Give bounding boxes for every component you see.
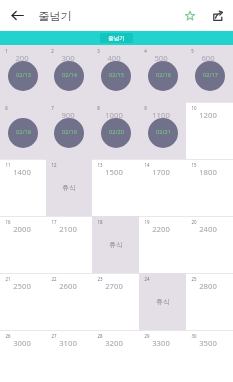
button[interactable]: 30 [186,330,233,382]
staticText: 1800 [199,167,217,177]
staticText: 1100 [152,110,170,120]
button[interactable]: 10 [186,102,233,159]
staticText: 11 [5,162,11,168]
staticText: 3100 [59,338,77,348]
button[interactable]: 5 [186,45,233,102]
staticText: 줄넘기 [38,9,72,23]
staticText: 2200 [152,224,170,234]
staticText: 02/15 [109,71,124,79]
staticText: 02/20 [109,128,124,136]
staticText: 3500 [199,338,217,348]
staticText: 2700 [105,281,123,291]
button[interactable]: 6 [0,102,46,159]
button[interactable]: 29 [139,330,186,382]
staticText: 휴식 [156,297,170,306]
staticText: 2 [51,48,54,54]
staticText: 200 [15,53,29,63]
staticText: 3 [97,48,100,54]
staticText: 30 [191,333,197,339]
staticText: 19 [144,219,150,225]
staticText: 4 [144,48,147,54]
button[interactable]: 13 [92,159,139,216]
button[interactable]: 8 [92,102,139,159]
button[interactable]: 22 [46,273,92,330]
staticText: 2400 [199,224,217,234]
staticText: 14 [144,162,150,168]
staticText: 5 [191,48,194,54]
staticText: 9 [144,105,147,111]
button[interactable]: 25 [186,273,233,330]
staticText: 1 [5,48,8,54]
staticText: 10 [191,105,197,111]
staticText: 휴식 [109,240,123,249]
staticText: 1200 [199,110,217,120]
staticText: 600 [201,53,215,63]
button[interactable]: Favorite [176,2,204,30]
staticText: 02/19 [62,128,77,136]
staticText: 27 [51,333,57,339]
staticText: 2800 [199,281,217,291]
button[interactable]: 11 [0,159,46,216]
button[interactable]: 23 [92,273,139,330]
staticText: 3300 [152,338,170,348]
button[interactable]: 7 [46,102,92,159]
button[interactable]: 21 [0,273,46,330]
staticText: 2100 [59,224,77,234]
staticText: 3200 [105,338,123,348]
staticText: 21 [5,276,11,282]
staticText: 8 [97,105,100,111]
button[interactable]: Back [0,0,31,31]
staticText: 20 [191,219,197,225]
staticText: 02/13 [16,71,31,79]
staticText: 18 [97,219,103,225]
staticText: 900 [61,110,75,120]
button[interactable]: 15 [186,159,233,216]
staticText: 17 [51,219,57,225]
button[interactable]: 줄넘기 [100,33,133,43]
button[interactable]: 19 [139,216,186,273]
button[interactable]: 3 [92,45,139,102]
staticText: 2500 [13,281,31,291]
staticText: 23 [97,276,103,282]
button[interactable]: 27 [46,330,92,382]
button[interactable]: 2 [46,45,92,102]
staticText: 16 [5,219,11,225]
staticText: 2600 [59,281,77,291]
staticText: 28 [97,333,103,339]
button[interactable]: 16 [0,216,46,273]
button[interactable]: 28 [92,330,139,382]
button[interactable]: 24 [139,273,186,330]
staticText: 13 [97,162,103,168]
staticText: 02/21 [156,128,171,136]
staticText: 7 [51,105,54,111]
staticText: 휴식 [62,183,76,192]
staticText: 02/14 [62,71,77,79]
staticText: 1400 [13,167,31,177]
button[interactable]: 18 [92,216,139,273]
staticText: 400 [107,53,121,63]
staticText: 1000 [105,110,123,120]
staticText: 02/16 [156,71,171,79]
button[interactable]: 1 [0,45,46,102]
button[interactable]: 12 [46,159,92,216]
staticText: 02/17 [203,71,218,79]
button[interactable]: 17 [46,216,92,273]
staticText: 26 [5,333,11,339]
staticText: 02/18 [16,128,31,136]
staticText: 300 [61,53,75,63]
button[interactable]: Share [204,2,232,30]
button[interactable]: 4 [139,45,186,102]
staticText: 1700 [152,167,170,177]
staticText: 줄넘기 [108,35,125,42]
button[interactable]: 14 [139,159,186,216]
staticText: 24 [144,276,150,282]
button[interactable]: 26 [0,330,46,382]
staticText: 15 [191,162,197,168]
button[interactable]: 9 [139,102,186,159]
staticText: 29 [144,333,150,339]
staticText: 500 [154,53,168,63]
staticText: 25 [191,276,197,282]
staticText: 12 [51,162,57,168]
button[interactable]: 20 [186,216,233,273]
staticText: 6 [5,105,8,111]
